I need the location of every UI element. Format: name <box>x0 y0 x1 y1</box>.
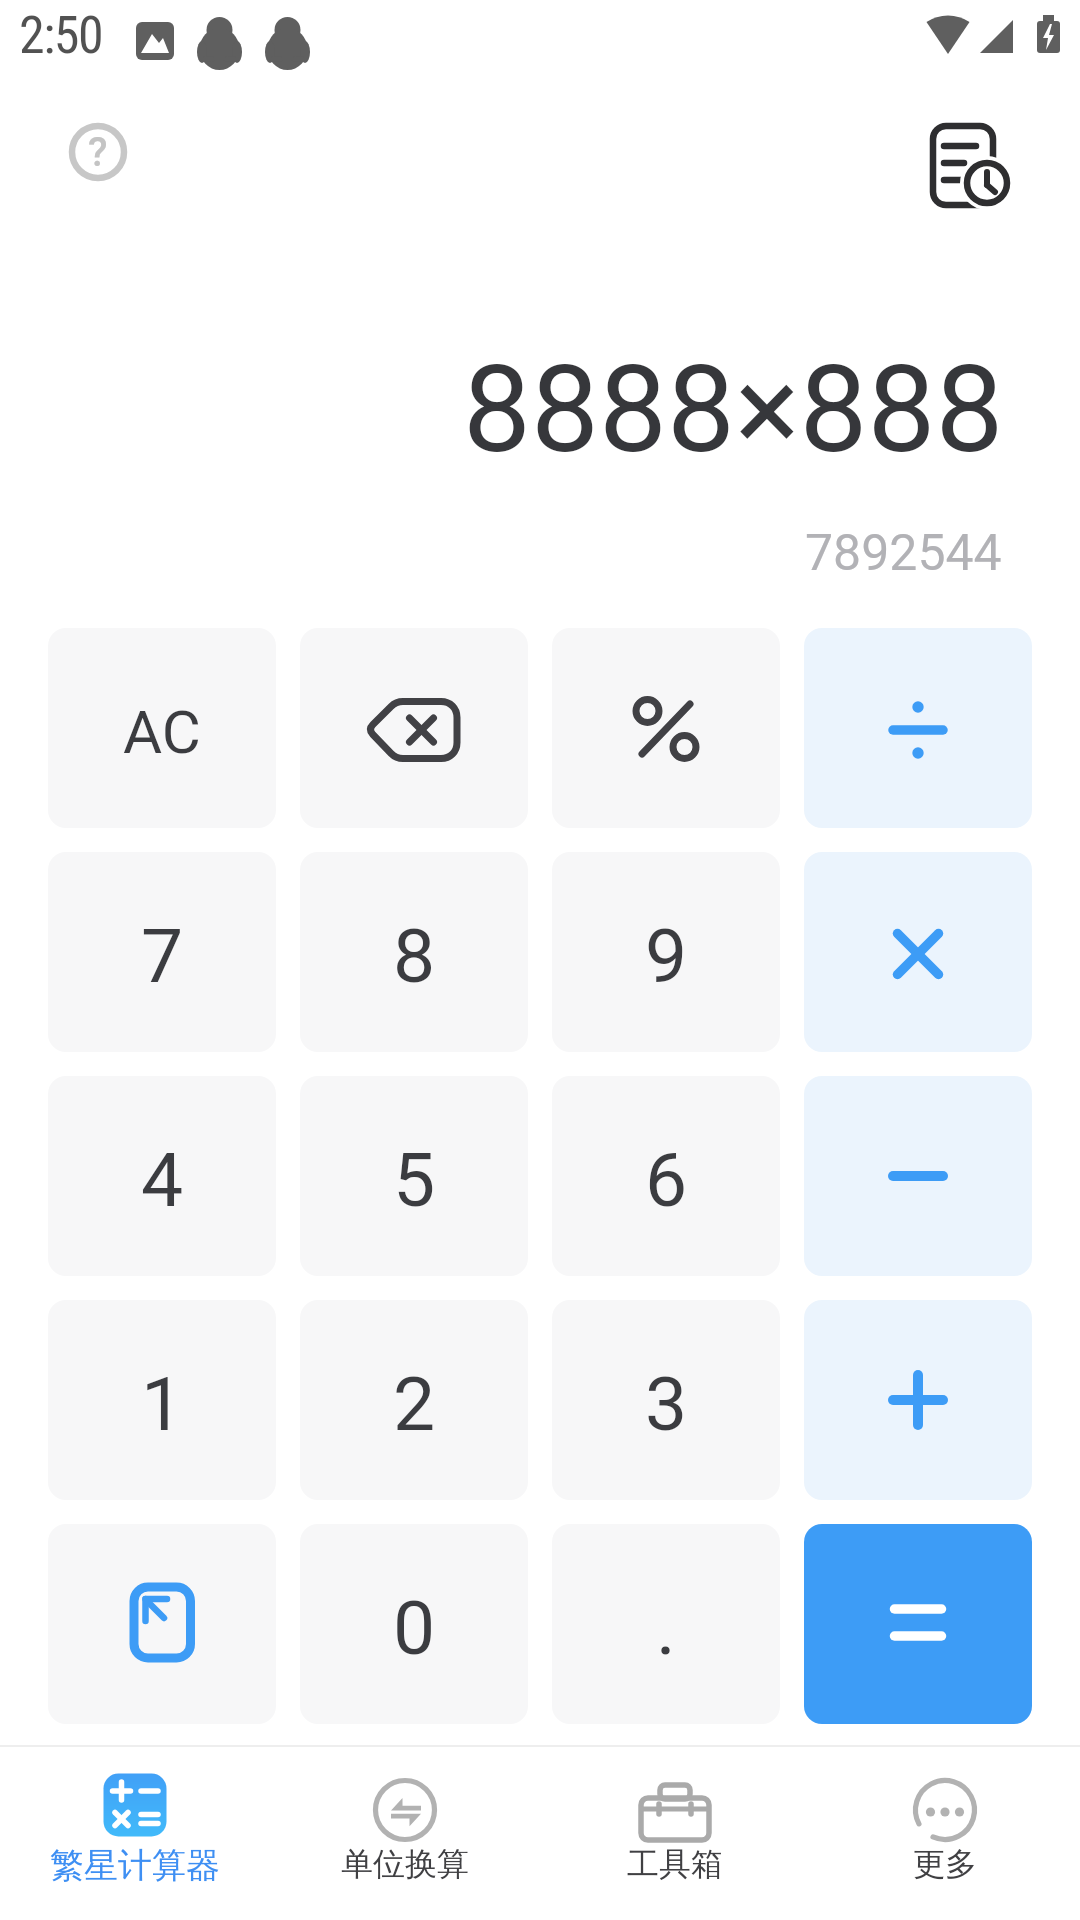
button[interactable]: 2 <box>300 1300 528 1500</box>
button[interactable]: 4 <box>48 1076 276 1276</box>
button[interactable]: . <box>552 1524 780 1724</box>
button[interactable]: 6 <box>552 1076 780 1276</box>
staticText: 2:50 <box>19 5 103 66</box>
button[interactable] <box>300 628 528 828</box>
button[interactable]: 更多 <box>810 1747 1080 1920</box>
staticText: 9 <box>645 912 688 1000</box>
button[interactable]: 单位换算 <box>270 1747 540 1920</box>
button[interactable]: 5 <box>300 1076 528 1276</box>
button[interactable] <box>804 628 1032 828</box>
staticText: 8888×888 <box>463 339 1004 481</box>
staticText: 6 <box>645 1136 688 1224</box>
button[interactable]: ? <box>66 120 130 184</box>
staticText: ? <box>88 129 108 176</box>
button[interactable]: 1 <box>48 1300 276 1500</box>
button[interactable] <box>804 1300 1032 1500</box>
button[interactable]: AC <box>48 628 276 828</box>
button[interactable]: 9 <box>552 852 780 1052</box>
button[interactable]: 0 <box>300 1524 528 1724</box>
button[interactable] <box>804 1076 1032 1276</box>
staticText: 7892544 <box>805 524 1002 583</box>
staticText: AC <box>123 697 201 767</box>
staticText: . <box>656 1584 676 1672</box>
staticText: 单位换算 <box>341 1844 469 1884</box>
staticText: 5 <box>393 1136 436 1224</box>
staticText: 7 <box>141 912 184 1000</box>
staticText: 8 <box>393 912 436 1000</box>
staticText: 4 <box>141 1136 184 1224</box>
button[interactable]: 工具箱 <box>540 1747 810 1920</box>
button[interactable]: 繁星计算器 <box>0 1747 270 1920</box>
button[interactable] <box>920 112 1020 212</box>
staticText: 3 <box>645 1360 688 1448</box>
button[interactable]: 7 <box>48 852 276 1052</box>
staticText: 0 <box>393 1584 436 1672</box>
button[interactable] <box>804 852 1032 1052</box>
staticText: 工具箱 <box>627 1844 723 1884</box>
staticText: 繁星计算器 <box>50 1844 220 1887</box>
staticText: 1 <box>141 1360 184 1448</box>
button[interactable] <box>48 1524 276 1724</box>
button[interactable] <box>804 1524 1032 1724</box>
button[interactable]: 3 <box>552 1300 780 1500</box>
button[interactable] <box>552 628 780 828</box>
button[interactable]: 8 <box>300 852 528 1052</box>
staticText: 2 <box>393 1360 436 1448</box>
staticText: 更多 <box>913 1844 977 1884</box>
